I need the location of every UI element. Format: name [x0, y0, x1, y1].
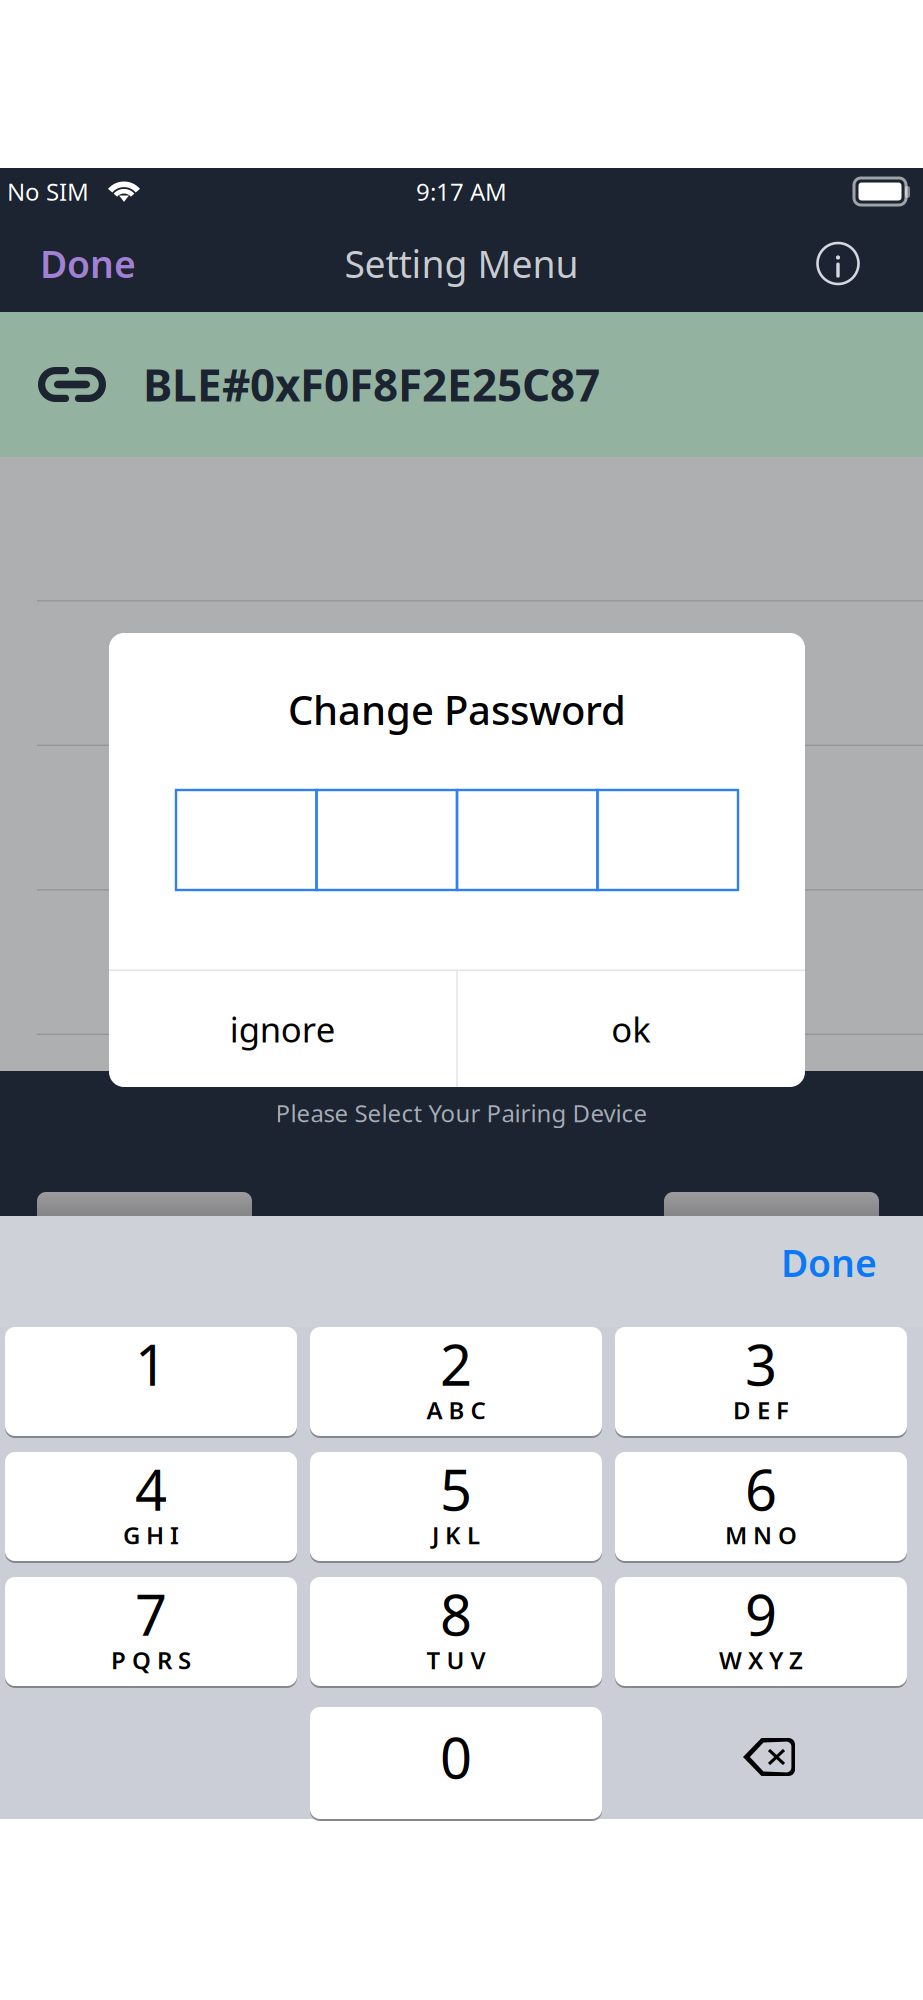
button[interactable]: Delete [615, 1707, 907, 1819]
staticText: A B C [426, 1394, 485, 1426]
button[interactable]: 7 [5, 1577, 297, 1686]
staticText: T U V [426, 1644, 485, 1676]
staticText: Done [781, 1238, 877, 1287]
staticText: Please Select Your Pairing Device [275, 1097, 647, 1129]
staticText: W X Y Z [719, 1644, 803, 1676]
staticText: BLE#0xF0F8F2E25C87 [143, 355, 600, 414]
staticText: G H I [123, 1519, 179, 1551]
button[interactable]: 3 [615, 1327, 907, 1436]
button[interactable]: 1 [5, 1327, 297, 1436]
button[interactable]: ignore [109, 971, 456, 1087]
button[interactable]: Done [759, 1224, 899, 1301]
staticText: P Q R S [111, 1644, 191, 1676]
staticText: 0 [440, 1720, 472, 1794]
staticText: Done [40, 239, 136, 288]
staticText: J K L [432, 1519, 480, 1551]
button[interactable]: Done [28, 227, 148, 300]
button[interactable]: 8 [310, 1577, 602, 1686]
staticText: ok [611, 1006, 651, 1052]
staticText: 7 [135, 1577, 167, 1651]
staticText: D E F [733, 1394, 789, 1426]
staticText: 9:17 AM [416, 176, 507, 207]
button[interactable]: ok [458, 971, 805, 1087]
button[interactable]: 4 [5, 1452, 297, 1561]
staticText: ignore [230, 1006, 336, 1052]
staticText: Setting Menu [344, 239, 578, 288]
staticText: 4 [135, 1452, 167, 1526]
staticText: 2 [440, 1327, 472, 1401]
button[interactable]: 5 [310, 1452, 602, 1561]
button[interactable]: Pairing device 1 [37, 1192, 252, 1248]
button[interactable]: 9 [615, 1577, 907, 1686]
button[interactable]: 0 [310, 1707, 602, 1819]
staticText: 6 [745, 1452, 777, 1526]
button[interactable]: 2 [310, 1327, 602, 1436]
staticText: 9 [745, 1577, 777, 1651]
button[interactable]: Pairing device 2 [664, 1192, 879, 1248]
staticText: 3 [745, 1327, 777, 1401]
staticText: No SIM [7, 176, 89, 207]
button[interactable]: 6 [615, 1452, 907, 1561]
staticText: 5 [440, 1452, 472, 1526]
staticText: 8 [440, 1577, 472, 1651]
staticText: 1 [135, 1327, 167, 1401]
staticText: Change Password [288, 683, 626, 736]
staticText: M N O [725, 1519, 797, 1551]
button[interactable]: Information [809, 240, 867, 286]
